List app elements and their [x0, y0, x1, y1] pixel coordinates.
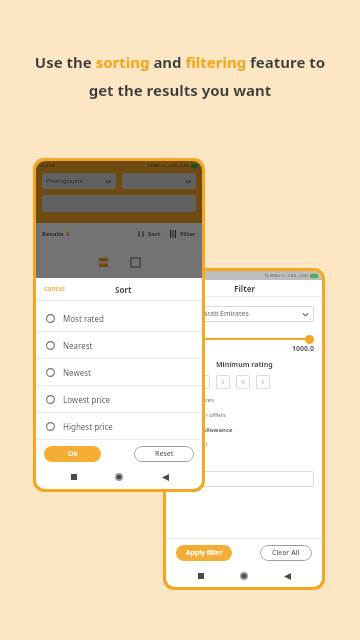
button[interactable]: Back [157, 469, 173, 485]
staticText: United Arab Emirates [179, 309, 249, 319]
staticText: With job allowance [176, 426, 233, 434]
staticText: Photographs [46, 177, 83, 185]
button[interactable]: List view [94, 253, 112, 271]
staticText: 13.9KB/s ⊙ ..il 4G ..il 4G [264, 273, 308, 278]
button[interactable]: Recent apps [193, 568, 209, 584]
staticText: Filter [234, 283, 255, 294]
button[interactable]: cancel [44, 284, 65, 294]
button[interactable]: Newest [36, 359, 202, 386]
button[interactable]: Price slider [305, 335, 314, 344]
button[interactable]: Clear All [260, 545, 312, 561]
staticText: cancel [44, 284, 65, 294]
button[interactable]: Nearest [36, 332, 202, 359]
button[interactable]: Sort [137, 230, 161, 238]
button[interactable]: Highest price [36, 413, 202, 440]
button[interactable]: Ok [44, 446, 101, 462]
staticText: Apply filter [186, 548, 223, 558]
button[interactable]: Filter [169, 230, 196, 238]
staticText: Reset [155, 449, 174, 459]
staticText: Hotels with offers [176, 411, 226, 419]
button[interactable]: 3 [216, 375, 230, 389]
button[interactable]: Back [279, 568, 295, 584]
staticText: Use the sorting and filtering feature to [20, 52, 340, 72]
button[interactable]: 2 [196, 375, 210, 389]
staticText: 1000.0 [292, 344, 314, 354]
staticText: get the results you want [20, 80, 340, 100]
button[interactable]: Most rated [36, 305, 202, 332]
staticText: 4 [241, 378, 245, 386]
staticText: Lowest price [63, 394, 111, 405]
staticText: Newest [63, 367, 91, 378]
staticText: 0 [66, 230, 70, 238]
button[interactable] [174, 471, 314, 487]
staticText: Most rated [63, 313, 104, 324]
button[interactable]: United Arab Emirates [174, 306, 314, 322]
staticText: Highest price [63, 421, 113, 432]
staticText: Food services [176, 396, 215, 404]
staticText: Results [42, 230, 66, 238]
staticText: Minimum rating [216, 360, 273, 370]
staticText: Sort [148, 230, 161, 238]
button[interactable] [42, 195, 196, 212]
button[interactable]: 4 [236, 375, 250, 389]
staticText: Filter [180, 230, 196, 238]
button[interactable]: Apply filter [176, 545, 232, 561]
button[interactable]: 1 [176, 375, 190, 389]
staticText: 5 [261, 378, 265, 386]
button[interactable]: Recent apps [66, 469, 82, 485]
button[interactable]: Map view [126, 253, 144, 271]
button[interactable]: Lowest price [36, 386, 202, 413]
staticText: Sort [115, 284, 132, 295]
staticText: Tags [174, 457, 190, 467]
staticText: 7.4KB/s ⊙ ..il 4G ..il 4G [147, 163, 189, 168]
button[interactable]: 5 [256, 375, 270, 389]
button[interactable]: Home [236, 568, 252, 584]
staticText: Nearest [63, 340, 93, 351]
staticText: Ok [68, 449, 78, 459]
staticText: 3:53 PM [40, 163, 56, 168]
staticText: Clear All [272, 548, 300, 558]
staticText: 2 [201, 378, 205, 386]
button[interactable] [122, 173, 196, 189]
staticText: 3 [221, 378, 225, 386]
button[interactable]: Photographs [42, 173, 116, 189]
staticText: Salary 2011 [176, 441, 209, 449]
button[interactable]: Reset [134, 446, 194, 462]
staticText: 1 [181, 378, 185, 386]
button[interactable]: Home [111, 469, 127, 485]
